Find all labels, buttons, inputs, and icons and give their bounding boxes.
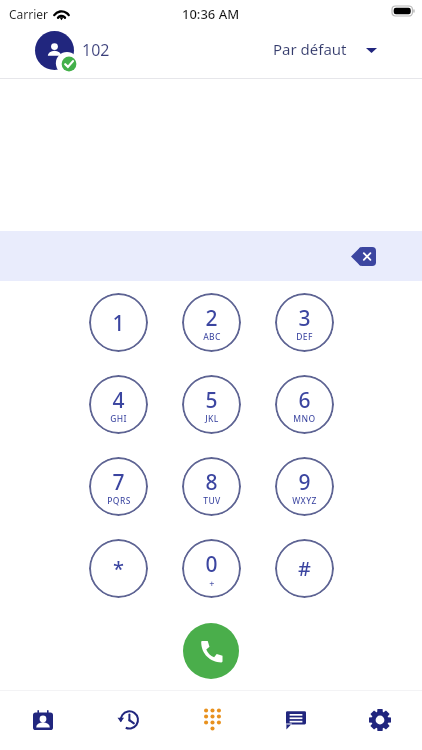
button[interactable]: 1 [89, 293, 148, 352]
staticText: MNO [293, 413, 316, 425]
staticText: ABC [203, 331, 221, 343]
staticText: 0 [205, 550, 218, 579]
staticText: 2 [205, 304, 218, 333]
staticText: JKL [205, 413, 219, 425]
button[interactable]: # [275, 539, 334, 598]
button[interactable]: 5 [182, 375, 241, 434]
button[interactable]: 0 [182, 539, 241, 598]
staticText: 6 [298, 386, 311, 415]
staticText: # [298, 555, 311, 582]
button[interactable]: Call history [85, 691, 170, 750]
staticText: WXYZ [292, 495, 317, 507]
staticText: + [209, 577, 215, 589]
staticText: PQRS [107, 495, 131, 507]
button[interactable]: Contacts [0, 691, 85, 750]
staticText: 5 [205, 386, 218, 415]
staticText: * [113, 555, 124, 582]
button[interactable]: 9 [275, 457, 334, 516]
staticText: Carrier [9, 6, 49, 22]
staticText: 1 [112, 309, 125, 338]
button[interactable]: 8 [182, 457, 241, 516]
button[interactable]: 4 [89, 375, 148, 434]
button[interactable]: 2 [182, 293, 241, 352]
button[interactable]: 6 [275, 375, 334, 434]
button[interactable]: Backspace [347, 243, 380, 269]
button[interactable]: 102 [35, 31, 110, 70]
button[interactable]: Call [183, 623, 239, 679]
staticText: 102 [82, 39, 110, 61]
staticText: 4 [112, 386, 125, 415]
staticText: TUV [203, 495, 221, 507]
staticText: 7 [112, 468, 125, 497]
staticText: 8 [205, 468, 218, 497]
staticText: GHI [110, 413, 127, 425]
staticText: DEF [296, 331, 313, 343]
staticText: Par défaut [273, 39, 347, 59]
button[interactable]: Settings [338, 691, 422, 750]
button[interactable]: 7 [89, 457, 148, 516]
button[interactable]: 3 [275, 293, 334, 352]
button[interactable]: Par défaut [273, 40, 377, 60]
staticText: 3 [298, 304, 311, 333]
button[interactable]: * [89, 539, 148, 598]
staticText: 9 [298, 468, 311, 497]
button[interactable]: Messages [254, 691, 338, 750]
staticText: 10:36 AM [182, 5, 240, 23]
button[interactable]: Dialpad [170, 691, 254, 750]
